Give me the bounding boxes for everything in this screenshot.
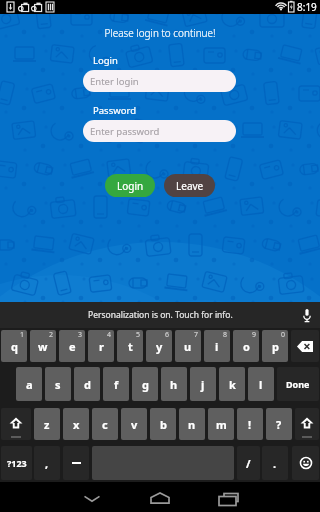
staticText: l [259, 377, 263, 392]
button[interactable]: t [117, 330, 143, 362]
staticText: q [11, 339, 18, 354]
button[interactable]: ? [266, 408, 292, 440]
staticText: Please login to continue! [0, 26, 320, 40]
staticText: Personalization is on. Touch for info. [88, 309, 233, 321]
button[interactable]: n [179, 408, 205, 440]
staticText: r [99, 339, 104, 354]
staticText: u [184, 339, 192, 354]
staticText: g [142, 377, 149, 392]
button[interactable]: p [262, 330, 288, 362]
staticText: h [170, 377, 178, 392]
staticText: z [44, 417, 50, 432]
button[interactable]: a [16, 367, 42, 401]
button[interactable]: y [146, 330, 172, 362]
button[interactable]: x [63, 408, 89, 440]
staticText: 0 [281, 330, 286, 340]
button[interactable]: Personalization is on. Touch for info. [0, 302, 320, 328]
button[interactable]: j [190, 367, 216, 401]
staticText: Password [93, 104, 136, 117]
staticText: d [84, 377, 91, 392]
staticText: a [26, 377, 33, 392]
staticText: 8:19 [297, 0, 317, 14]
button[interactable]: Voice input [294, 302, 320, 328]
button[interactable]: e [59, 330, 85, 362]
staticText: 5 [136, 330, 141, 340]
button[interactable]: w [30, 330, 56, 362]
button[interactable]: back [291, 330, 319, 362]
staticText: m [216, 417, 227, 432]
staticText: e [69, 339, 76, 354]
staticText: p [272, 339, 279, 354]
button[interactable]: r [88, 330, 114, 362]
staticText: x [73, 417, 80, 432]
button[interactable]: g [132, 367, 158, 401]
staticText: o [243, 339, 250, 354]
staticText: s [55, 377, 61, 392]
button[interactable]: Done [277, 367, 319, 401]
button[interactable]: emoji [292, 446, 319, 480]
button[interactable]: q [1, 330, 27, 362]
button[interactable]: s [45, 367, 71, 401]
button[interactable]: c [92, 408, 118, 440]
button[interactable]: d [74, 367, 100, 401]
staticText: Login [93, 54, 118, 67]
staticText: b [160, 417, 167, 432]
button[interactable]: z [34, 408, 60, 440]
button[interactable]: shift [1, 408, 31, 440]
staticText: / [246, 456, 251, 471]
staticText: Enter login [90, 75, 139, 88]
staticText: 8 [223, 330, 228, 340]
button[interactable]: b [150, 408, 176, 440]
button[interactable]: Enter login [83, 70, 236, 92]
staticText: 1 [20, 330, 25, 340]
staticText: 6 [165, 330, 170, 340]
button[interactable]: k [219, 367, 245, 401]
button[interactable]: / [237, 446, 260, 480]
staticText: v [131, 417, 138, 432]
staticText: y [156, 339, 163, 354]
button[interactable]: v [121, 408, 147, 440]
staticText: k [229, 377, 236, 392]
staticText: i [215, 339, 219, 354]
staticText: j [201, 377, 205, 392]
button[interactable]: u [175, 330, 201, 362]
staticText: 9 [252, 330, 257, 340]
button[interactable]: f [103, 367, 129, 401]
button[interactable]: Enter password [83, 120, 236, 142]
button[interactable]: h [161, 367, 187, 401]
staticText: ? [276, 417, 282, 432]
staticText: Login [117, 179, 144, 193]
staticText: 3 [78, 330, 83, 340]
staticText: Leave [176, 179, 204, 193]
button[interactable]: o [233, 330, 259, 362]
staticText: ?123 [7, 457, 27, 469]
staticText: 2 [49, 330, 54, 340]
staticText: w [38, 339, 48, 354]
button[interactable]: m [208, 408, 234, 440]
button[interactable]: i [204, 330, 230, 362]
button[interactable]: , [34, 446, 60, 480]
button[interactable]: dash [63, 446, 89, 480]
staticText: 7 [194, 330, 199, 340]
button[interactable]: Home [140, 482, 180, 512]
button[interactable]: Hide keyboard [72, 482, 112, 512]
staticText: . [273, 456, 277, 471]
staticText: t [128, 339, 133, 354]
staticText: , [45, 456, 49, 471]
staticText: Done [286, 378, 310, 390]
staticText: f [114, 377, 119, 392]
staticText: n [188, 417, 196, 432]
button[interactable]: ?123 [1, 446, 32, 480]
button[interactable]: ! [237, 408, 263, 440]
staticText: Enter password [90, 125, 160, 138]
button[interactable]: shift [295, 408, 319, 440]
button[interactable]: Login [105, 174, 155, 197]
button[interactable]: . [262, 446, 288, 480]
button[interactable]: Leave [164, 174, 215, 197]
staticText: 4 [107, 330, 112, 340]
button[interactable]: l [248, 367, 274, 401]
staticText: c [102, 417, 108, 432]
staticText: ! [248, 417, 252, 432]
button[interactable]: Recent apps [209, 482, 249, 512]
